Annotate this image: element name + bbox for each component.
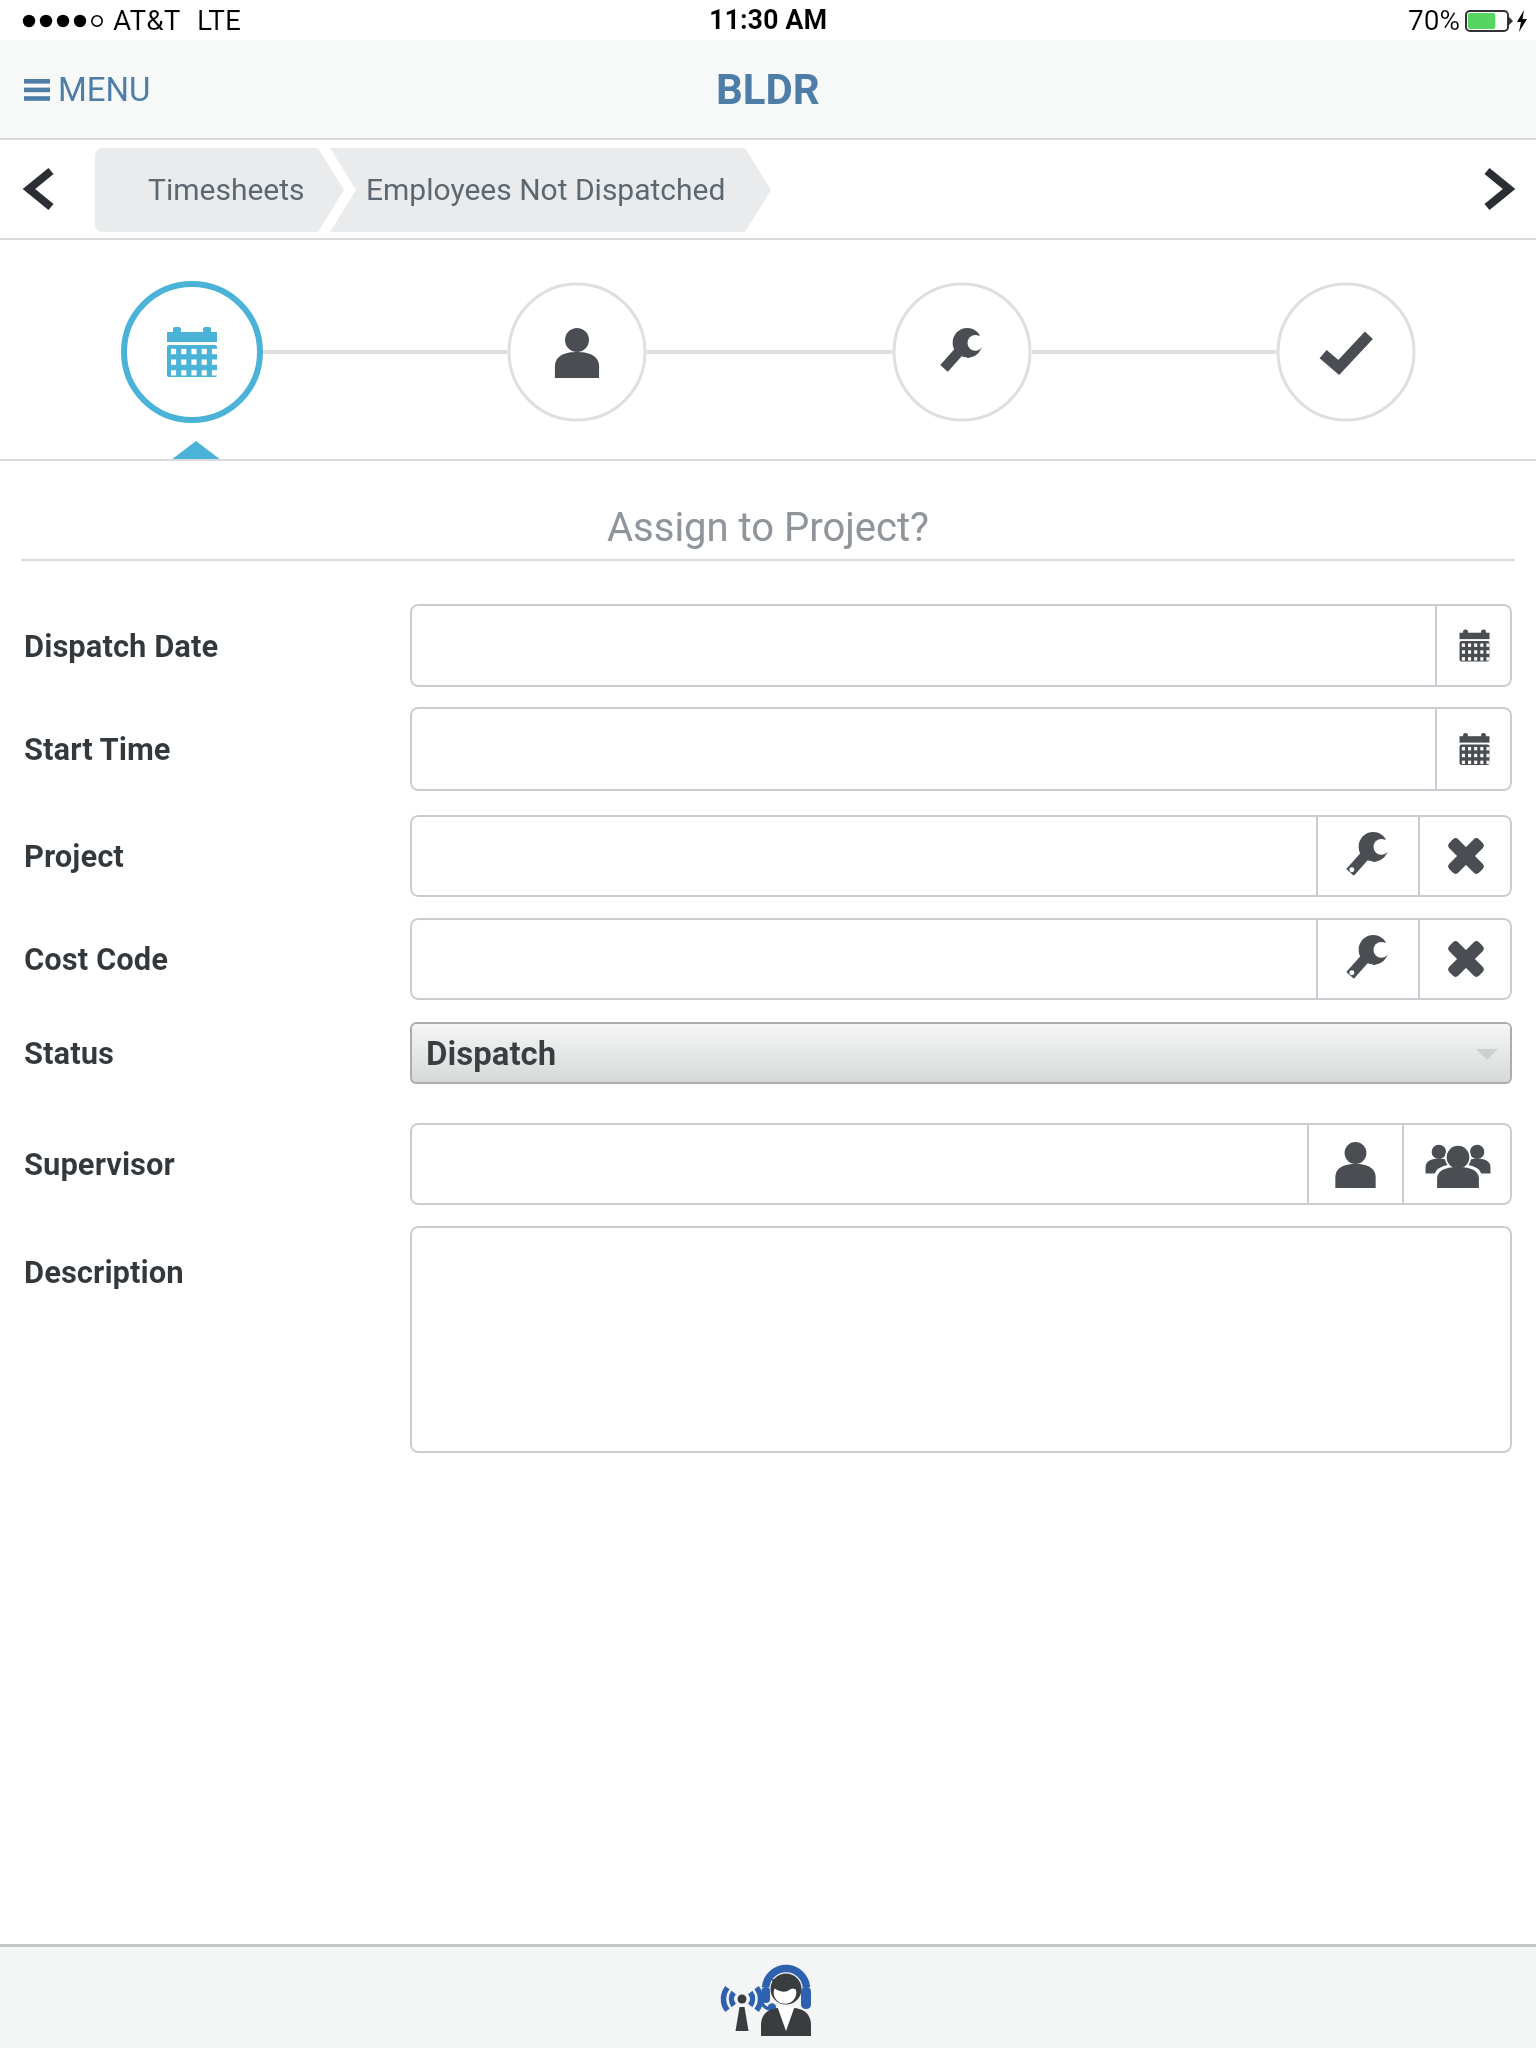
staticText: Start Time xyxy=(24,731,171,767)
button[interactable] xyxy=(1437,707,1512,791)
staticText: Project xyxy=(24,838,124,874)
button[interactable]: Dispatch xyxy=(410,1022,1512,1084)
button[interactable] xyxy=(123,284,261,422)
button[interactable] xyxy=(1318,815,1418,897)
staticText: MENU xyxy=(58,70,151,109)
button[interactable] xyxy=(1277,284,1415,422)
staticText: Dispatch Date xyxy=(24,628,219,664)
button[interactable] xyxy=(508,284,646,422)
button[interactable] xyxy=(16,167,60,211)
staticText: AT&T xyxy=(113,4,181,37)
button[interactable] xyxy=(410,1226,1512,1453)
staticText: Supervisor xyxy=(24,1146,175,1182)
staticText: 11:30 AM xyxy=(709,4,828,36)
button[interactable] xyxy=(410,604,1435,687)
button[interactable]: Timesheets xyxy=(148,172,305,207)
button[interactable] xyxy=(722,1952,814,2044)
button[interactable] xyxy=(1478,167,1522,211)
button[interactable] xyxy=(893,284,1031,422)
button[interactable]: Employees Not Dispatched xyxy=(366,172,726,207)
button[interactable] xyxy=(410,707,1435,791)
staticText: Dispatch xyxy=(426,1034,557,1073)
button[interactable] xyxy=(1318,918,1418,1000)
button[interactable]: MENU xyxy=(24,70,151,109)
button[interactable] xyxy=(410,1123,1307,1205)
button[interactable] xyxy=(410,815,1316,897)
staticText: Status xyxy=(24,1035,114,1071)
button[interactable] xyxy=(1420,815,1512,897)
staticText: 70% xyxy=(1408,4,1460,37)
button[interactable] xyxy=(1404,1123,1512,1205)
button[interactable] xyxy=(1420,918,1512,1000)
staticText: Cost Code xyxy=(24,941,169,977)
staticText: Assign to Project? xyxy=(607,504,929,551)
staticText: BLDR xyxy=(716,65,820,114)
staticText: Description xyxy=(24,1254,184,1290)
button[interactable] xyxy=(410,918,1316,1000)
button[interactable] xyxy=(1309,1123,1402,1205)
button[interactable] xyxy=(1437,604,1512,687)
staticText: LTE xyxy=(197,4,241,37)
